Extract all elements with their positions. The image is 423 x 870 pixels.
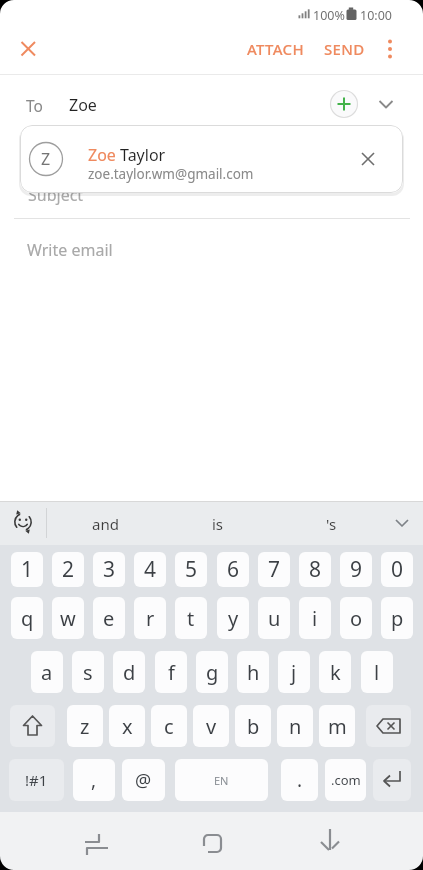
staticText: EN [214,773,229,788]
button[interactable]: y [217,597,249,639]
button[interactable]: 5 [175,552,207,587]
staticText: Zoe Taylor [88,144,166,166]
staticText: 8 [309,555,322,584]
button[interactable]: x [109,705,145,747]
button[interactable]: d [113,651,145,693]
button[interactable] [10,36,44,64]
button[interactable]: o [340,597,372,639]
staticText: u [268,605,281,632]
staticText: j [291,659,297,686]
staticText: 0 [391,555,404,584]
button[interactable]: v [193,705,229,747]
staticText: o [350,605,363,632]
button[interactable]: !#1 [9,759,64,801]
button[interactable] [366,705,411,747]
button[interactable] [388,508,418,538]
staticText: e [103,605,115,632]
staticText: 7 [268,555,281,584]
staticText: and [92,514,119,534]
button[interactable]: a [31,651,63,693]
staticText: 100% [313,7,345,24]
button[interactable] [373,759,411,801]
button[interactable]: r [134,597,166,639]
button[interactable]: 3 [93,552,125,587]
button[interactable] [6,505,42,541]
button[interactable]: j [278,651,310,693]
staticText: . [297,767,303,793]
button[interactable]: and [60,502,150,545]
button[interactable] [372,90,400,118]
staticText: i [312,605,318,632]
button[interactable] [308,820,352,864]
staticText: Zoe [69,94,97,116]
button[interactable] [330,90,358,118]
button[interactable] [354,145,382,173]
button[interactable]: @ [122,759,165,801]
button[interactable]: q [11,597,43,639]
staticText: zoe.taylor.wm@gmail.com [88,165,254,183]
staticText: !#1 [25,770,48,790]
staticText: c [164,713,174,740]
button[interactable] [378,36,404,62]
button[interactable]: e [93,597,125,639]
button[interactable]: g [196,651,228,693]
button[interactable]: 0 [381,552,413,587]
button[interactable]: ATTACH [240,36,310,62]
button[interactable]: f [155,651,187,693]
staticText: To [26,95,43,116]
staticText: l [374,659,380,686]
staticText: Subject [28,184,84,206]
staticText: n [289,713,302,740]
staticText: 9 [350,555,363,584]
staticText: f [168,659,175,686]
button[interactable]: w [52,597,84,639]
staticText: m [328,713,347,740]
staticText: b [247,713,260,740]
button[interactable]: p [381,597,413,639]
staticText: t [187,605,195,632]
button[interactable]: t [175,597,207,639]
staticText: Z [41,148,51,170]
button[interactable]: z [67,705,103,747]
button[interactable]: s [72,651,104,693]
staticText: 's [326,514,337,534]
staticText: 1 [21,555,34,584]
button[interactable]: 2 [52,552,84,587]
button[interactable]: n [277,705,313,747]
button[interactable]: is [173,502,263,545]
button[interactable]: . [281,759,318,801]
button[interactable]: 1 [11,552,43,587]
button[interactable]: 8 [299,552,331,587]
staticText: k [330,659,341,686]
button[interactable]: .com [325,759,366,801]
button[interactable]: h [237,651,269,693]
button[interactable]: Z [20,125,403,193]
button[interactable]: 4 [134,552,166,587]
staticText: q [21,605,34,632]
button[interactable]: i [299,597,331,639]
staticText: ATTACH [247,39,304,59]
button[interactable]: SEND [318,36,370,62]
button[interactable]: k [319,651,351,693]
staticText: r [146,605,155,632]
button[interactable]: 6 [217,552,249,587]
staticText: s [83,659,93,686]
staticText: w [60,605,76,632]
button[interactable]: u [258,597,290,639]
button[interactable]: 's [286,502,376,545]
button[interactable]: b [235,705,271,747]
staticText: 4 [144,555,157,584]
button[interactable] [75,820,119,864]
staticText: d [123,659,136,686]
button[interactable] [190,820,234,864]
staticText: z [80,713,90,740]
button[interactable]: , [73,759,115,801]
button[interactable]: 9 [340,552,372,587]
button[interactable]: EN [175,759,268,801]
button[interactable]: m [319,705,355,747]
button[interactable]: l [361,651,393,693]
button[interactable]: c [151,705,187,747]
staticText: 5 [185,555,198,584]
button[interactable]: 7 [258,552,290,587]
button[interactable] [10,705,55,747]
